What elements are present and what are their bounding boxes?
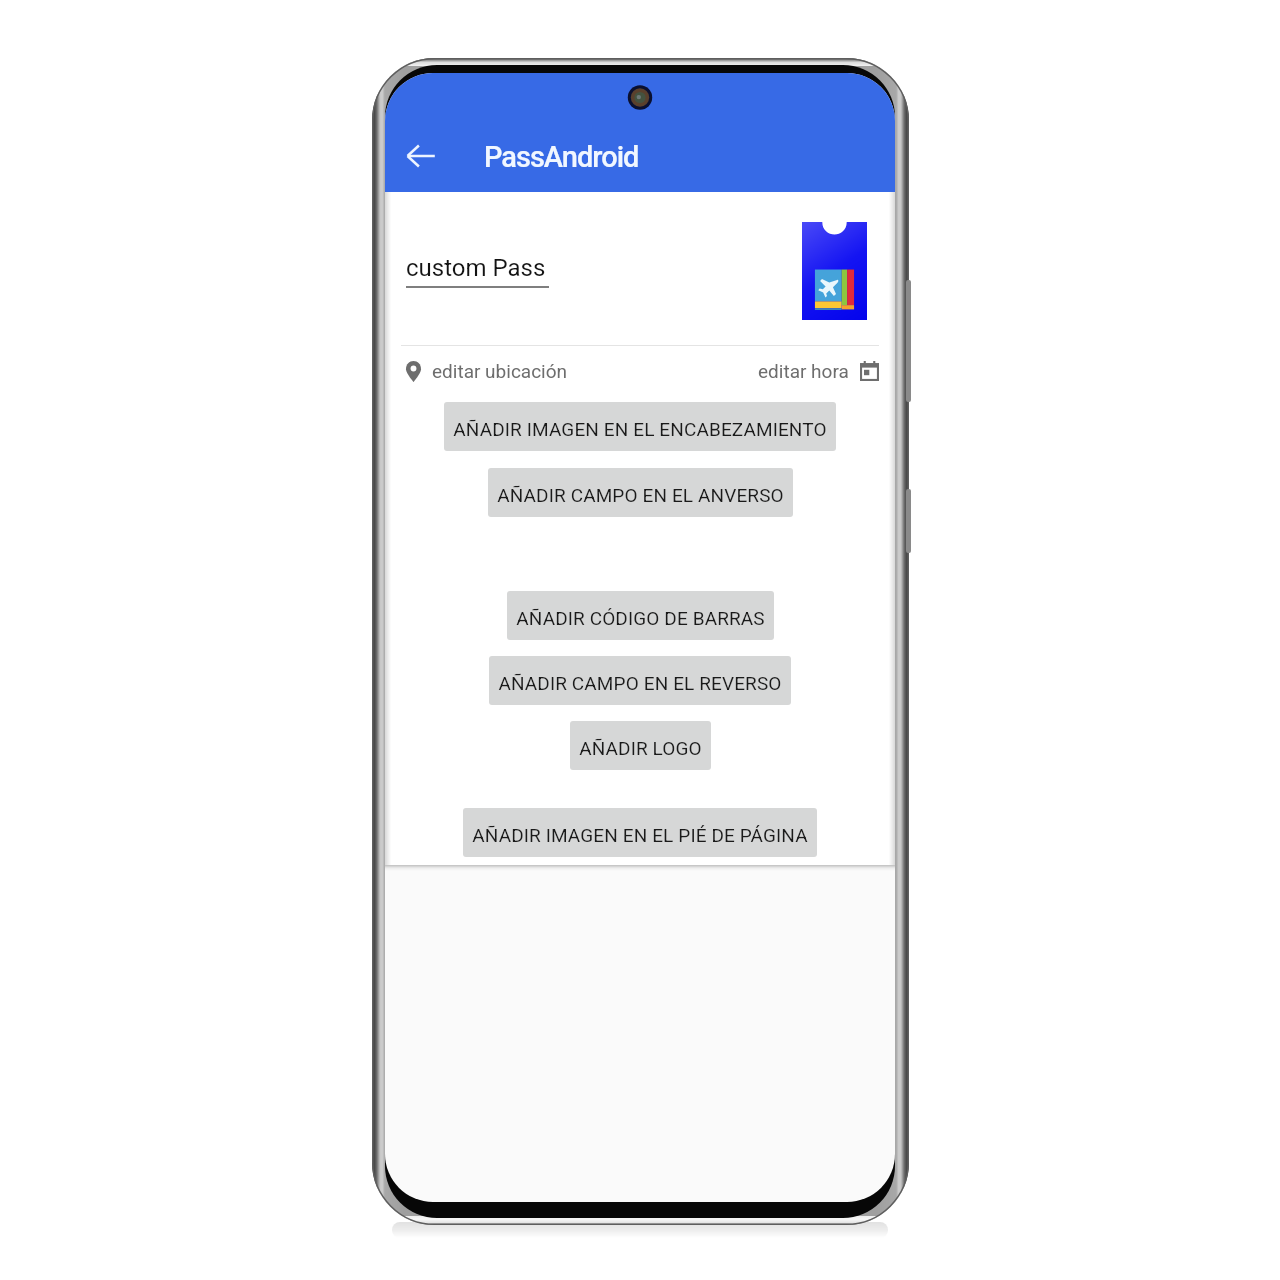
staticText: AÑADIR CAMPO EN EL ANVERSO xyxy=(497,484,784,506)
staticText: editar ubicación xyxy=(432,360,568,382)
button[interactable]: AÑADIR IMAGEN EN EL PIÉ DE PÁGINA xyxy=(463,808,817,857)
button[interactable]: Back xyxy=(395,130,447,182)
button[interactable]: AÑADIR CÓDIGO DE BARRAS xyxy=(507,591,774,640)
button[interactable]: AÑADIR CAMPO EN EL ANVERSO xyxy=(488,468,793,517)
staticText: AÑADIR LOGO xyxy=(579,737,702,759)
button[interactable]: AÑADIR LOGO xyxy=(570,721,711,770)
staticText: PassAndroid xyxy=(484,140,639,174)
staticText: AÑADIR IMAGEN EN EL ENCABEZAMIENTO xyxy=(453,418,827,440)
button[interactable]: editar hora xyxy=(758,360,879,382)
button[interactable]: AÑADIR IMAGEN EN EL ENCABEZAMIENTO xyxy=(444,402,836,451)
staticText: custom Pass xyxy=(406,254,546,282)
staticText: editar hora xyxy=(758,360,849,382)
staticText: AÑADIR CAMPO EN EL REVERSO xyxy=(498,672,782,694)
staticText: AÑADIR CÓDIGO DE BARRAS xyxy=(516,607,765,629)
staticText: AÑADIR IMAGEN EN EL PIÉ DE PÁGINA xyxy=(472,824,808,846)
button[interactable]: AÑADIR CAMPO EN EL REVERSO xyxy=(489,656,791,705)
button[interactable]: editar ubicación xyxy=(406,360,568,382)
